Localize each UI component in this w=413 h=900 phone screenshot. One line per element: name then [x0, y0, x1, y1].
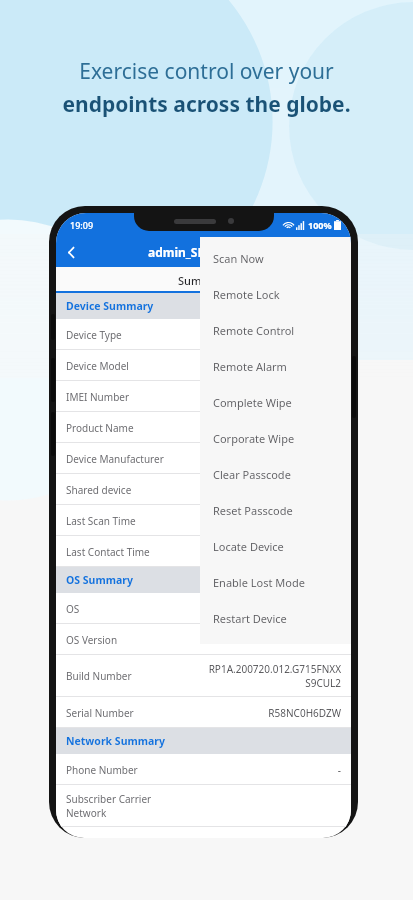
staticText: OS Summary [66, 573, 133, 587]
staticText: Device Summary [66, 299, 154, 313]
staticText: OS [66, 602, 341, 616]
staticText: - [337, 763, 341, 777]
staticText: IMEI Number [66, 390, 341, 404]
staticText: OS Version [66, 633, 329, 647]
button[interactable]: Summary [56, 267, 351, 293]
staticText: Device Manufacturer [66, 452, 341, 466]
button[interactable]: Complete Wipe [200, 384, 351, 420]
staticText: Shared device [66, 483, 341, 497]
staticText: Clear Passcode [213, 467, 291, 482]
button[interactable]: Remote Control [200, 312, 351, 348]
staticText: Exercise control over your [79, 57, 334, 86]
staticText: 19:09 [70, 219, 94, 231]
button[interactable]: Locate Device [200, 528, 351, 564]
button[interactable]: Reset Passcode [200, 492, 351, 528]
staticText: Device Type [66, 328, 341, 342]
button[interactable]: Device Summary [56, 293, 351, 319]
button[interactable]: Phone Number [56, 754, 351, 785]
staticText: Restart Device [213, 611, 287, 626]
button[interactable]: Build Number [56, 655, 351, 697]
button[interactable]: Last Contact Time [56, 536, 351, 567]
staticText: admin_SM-G715FN [148, 244, 259, 260]
staticText: RP1A.200720.012.G715FNXX S9CUL2 [208, 662, 341, 690]
staticText: Subscriber Carrier Network [66, 792, 341, 820]
staticText: Last Contact Time [66, 545, 341, 559]
button[interactable]: OS [56, 593, 351, 624]
staticText: Locate Device [213, 539, 284, 554]
button[interactable]: Restart Device [200, 600, 351, 636]
staticText: R58NC0H6DZW [268, 706, 341, 720]
staticText: Summary [178, 273, 229, 288]
button[interactable]: OS Summary [56, 567, 351, 593]
staticText: Remote Control [213, 323, 295, 338]
button[interactable]: Clear Passcode [200, 456, 351, 492]
staticText: 100% [308, 219, 332, 231]
button[interactable]: Network Summary [56, 728, 351, 754]
button[interactable]: Subscriber Carrier Network [56, 785, 351, 827]
button[interactable]: Serial Number [56, 697, 351, 728]
button[interactable]: Device Type [56, 319, 351, 350]
staticText: Scan Now [213, 251, 264, 266]
button[interactable]: IMEI Number [56, 381, 351, 412]
staticText: Remote Alarm [213, 359, 287, 374]
staticText: Complete Wipe [213, 395, 292, 410]
staticText: Corporate Wipe [213, 431, 295, 446]
staticText: Reset Passcode [213, 503, 293, 518]
button[interactable]: Remote Lock [200, 276, 351, 312]
staticText: Build Number [66, 669, 208, 683]
button[interactable]: Scan Now [200, 240, 351, 276]
button[interactable]: Device Model [56, 350, 351, 381]
staticText: Enable Lost Mode [213, 575, 305, 590]
staticText: Last Scan Time [66, 514, 341, 528]
staticText: Remote Lock [213, 287, 280, 302]
button[interactable]: Shared device [56, 474, 351, 505]
button[interactable]: Enable Lost Mode [200, 564, 351, 600]
button[interactable]: OS Version [56, 624, 351, 655]
button[interactable]: Back [56, 237, 86, 267]
button[interactable]: Corporate Wipe [200, 420, 351, 456]
button[interactable]: Last Scan Time [56, 505, 351, 536]
staticText: Device Model [66, 359, 341, 373]
staticText: 11 [329, 633, 341, 647]
button[interactable]: Remote Alarm [200, 348, 351, 384]
staticText: endpoints across the globe. [62, 90, 351, 119]
staticText: Network Summary [66, 734, 165, 748]
staticText: Phone Number [66, 763, 337, 777]
button[interactable]: Device Manufacturer [56, 443, 351, 474]
staticText: Product Name [66, 421, 341, 435]
button[interactable]: Product Name [56, 412, 351, 443]
staticText: Serial Number [66, 706, 268, 720]
